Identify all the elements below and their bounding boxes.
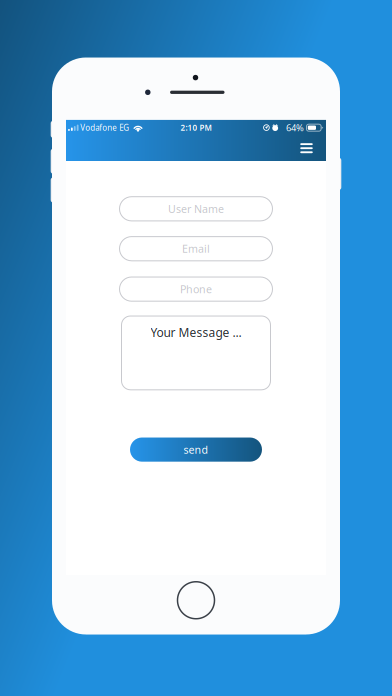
- button[interactable]: Menu: [293, 137, 326, 160]
- button[interactable]: Your Message ...: [121, 316, 270, 390]
- button[interactable]: User Name: [119, 197, 272, 221]
- staticText: User Name: [168, 202, 224, 216]
- staticText: 64%: [286, 121, 304, 134]
- staticText: Your Message ...: [150, 324, 241, 340]
- button[interactable]: Email: [119, 237, 272, 261]
- staticText: Phone: [180, 282, 212, 296]
- staticText: 2:10 PM: [180, 122, 211, 133]
- button[interactable]: Phone: [119, 277, 272, 301]
- button[interactable]: send: [130, 437, 262, 462]
- staticText: Vodafone EG: [80, 122, 129, 133]
- staticText: send: [183, 442, 208, 457]
- staticText: Email: [182, 242, 210, 256]
